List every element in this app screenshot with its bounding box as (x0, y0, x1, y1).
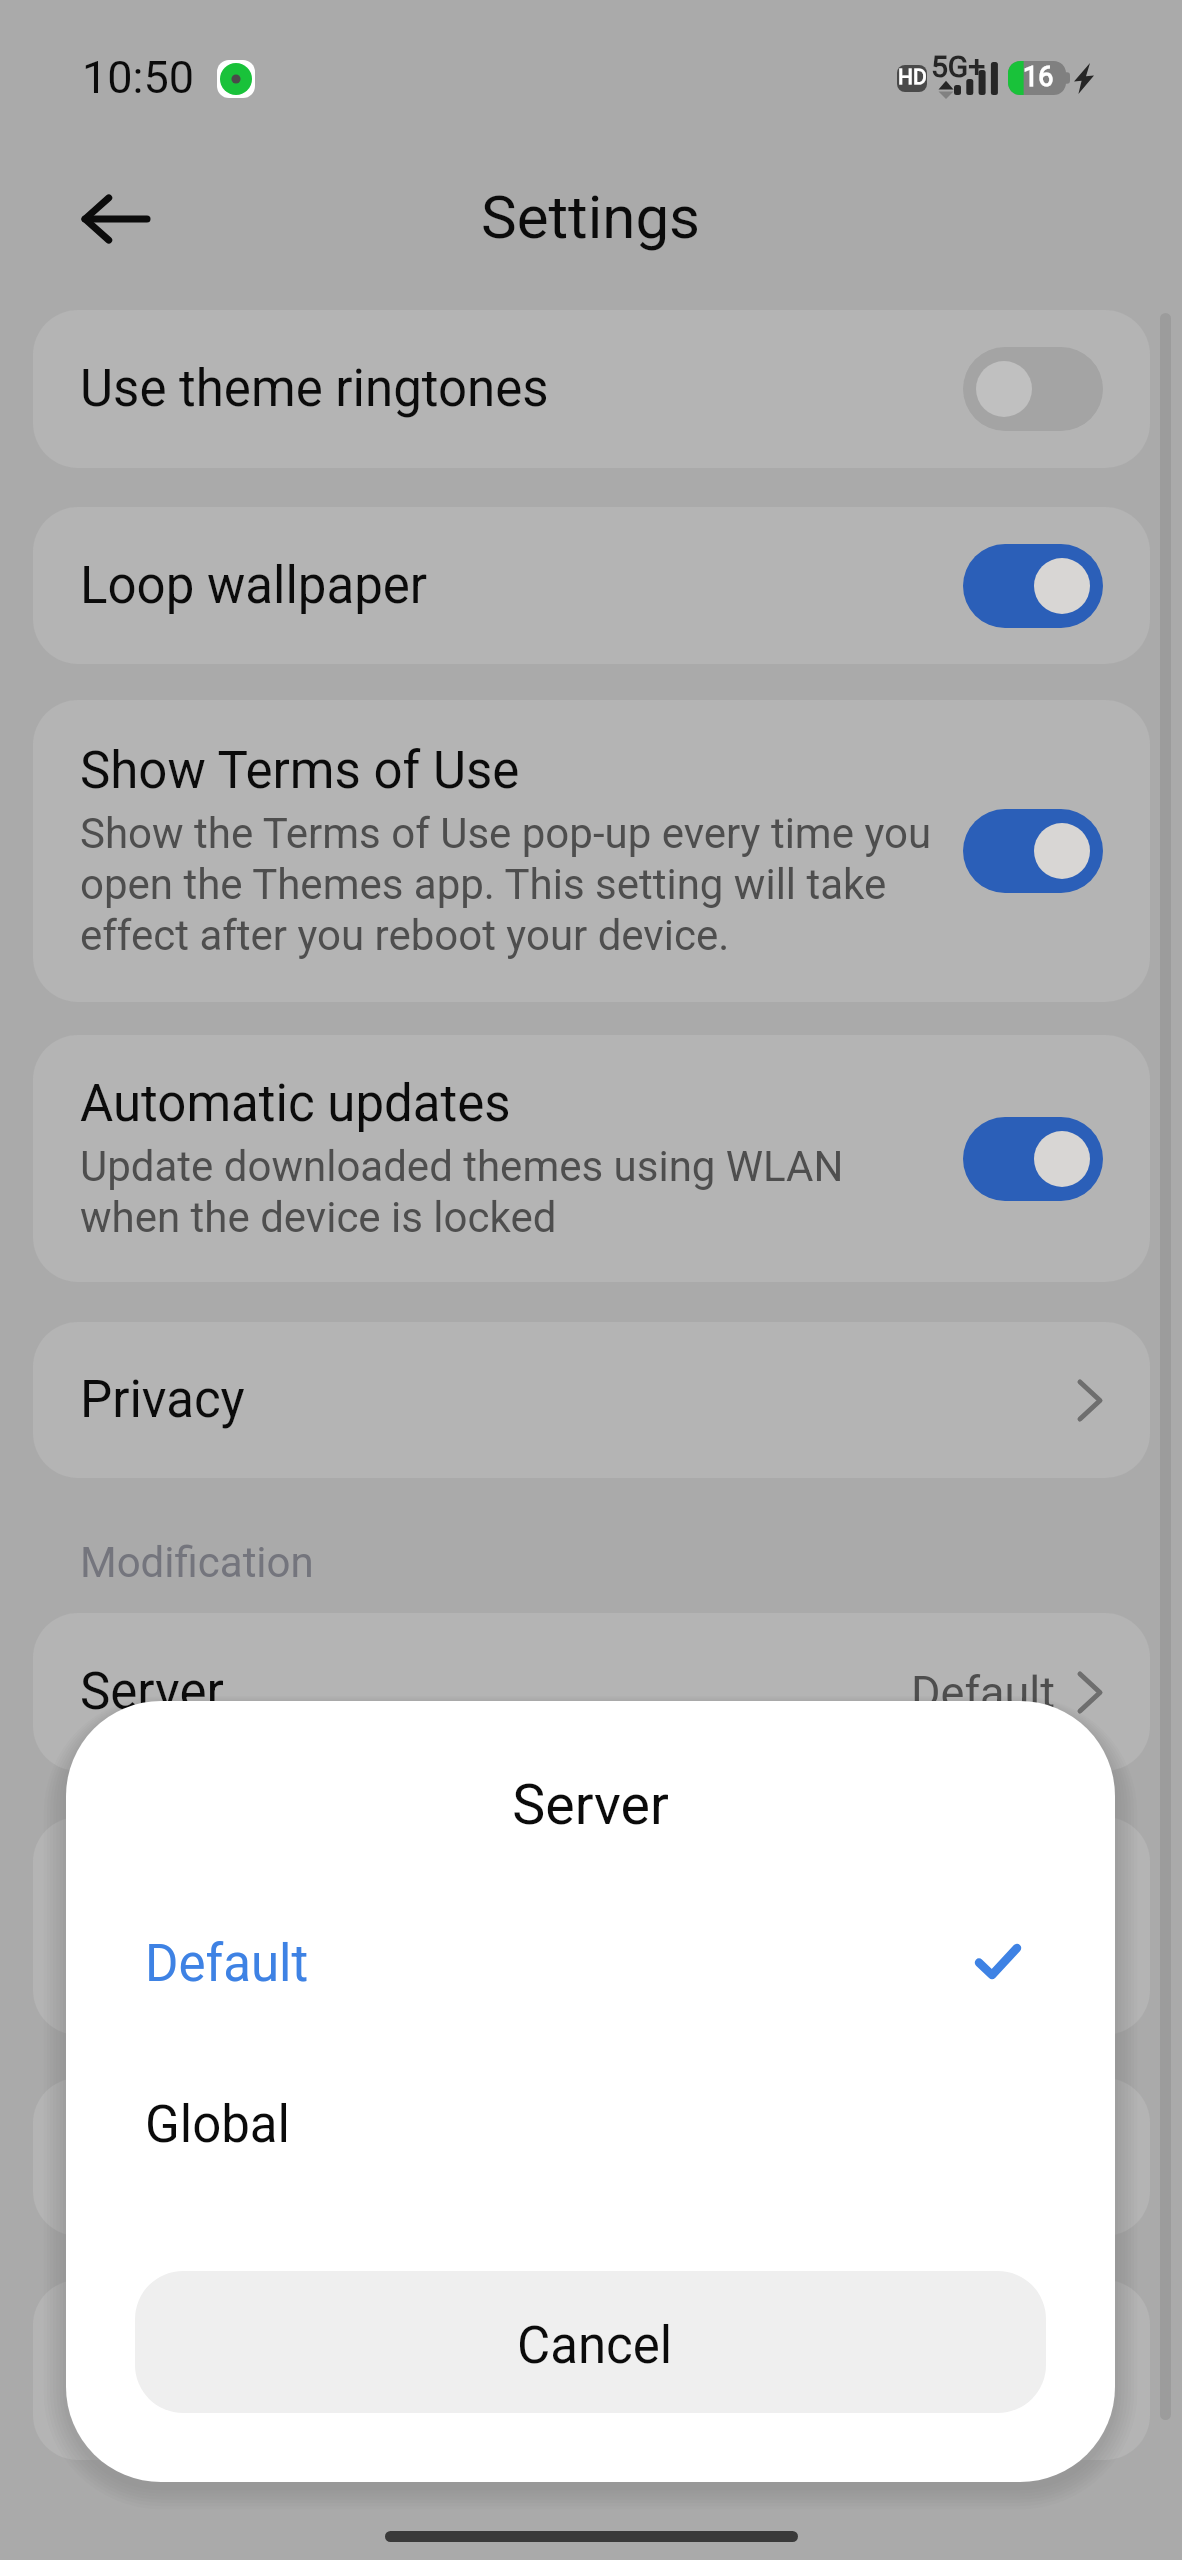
button[interactable]: Privacy (33, 1322, 1150, 1478)
button[interactable]: Server (33, 1613, 1150, 1771)
staticText: Default (145, 1934, 309, 1994)
staticText: Settings (481, 182, 701, 252)
staticText: About (80, 2340, 216, 2400)
staticText: Show the Terms of Use pop-up every time … (80, 809, 933, 961)
button[interactable]: Toggle off (963, 347, 1103, 431)
staticText: Show Terms of Use (80, 741, 520, 801)
button[interactable]: Loop wallpaper (33, 507, 1150, 664)
staticText: Use theme ringtones (80, 359, 549, 419)
staticText: Global (145, 2095, 291, 2155)
staticText: Server (66, 1773, 1115, 1838)
button[interactable]: Global (66, 2043, 1115, 2203)
button[interactable]: Automatic updates (33, 1035, 1150, 1282)
staticText: Modification (80, 1538, 314, 1587)
button[interactable]: Toggle on (963, 809, 1103, 893)
button[interactable]: Toggle off (963, 1884, 1103, 1968)
staticText: Clear cache (80, 2127, 347, 2187)
button[interactable]: About (33, 2280, 1150, 2460)
staticText: Loop wallpaper (80, 556, 428, 616)
button[interactable]: Cancel (135, 2271, 1046, 2413)
staticText: Automatic updates (80, 1074, 511, 1134)
staticText: Privacy (80, 1370, 245, 1430)
staticText: 16 (1023, 61, 1054, 93)
button[interactable]: Back (48, 153, 180, 285)
staticText: 10:50 (82, 51, 195, 104)
staticText: Default (911, 1666, 1055, 1719)
button[interactable]: Toggle on (963, 1117, 1103, 1201)
staticText: Only download theme resources when the d… (80, 1910, 933, 2011)
staticText: Server (80, 1662, 224, 1722)
button[interactable]: Use theme ringtones (33, 310, 1150, 468)
button[interactable]: Data saver (33, 1817, 1150, 2035)
staticText: Cancel (517, 2316, 673, 2376)
button[interactable]: Clear cache (33, 2078, 1150, 2236)
button[interactable]: Default (66, 1883, 1115, 2043)
button[interactable]: Show Terms of Use (33, 700, 1150, 1002)
staticText: HD (898, 65, 927, 90)
staticText: Update downloaded themes using WLAN when… (80, 1142, 933, 1243)
button[interactable]: Toggle on (963, 544, 1103, 628)
staticText: 5G+ (931, 49, 986, 84)
